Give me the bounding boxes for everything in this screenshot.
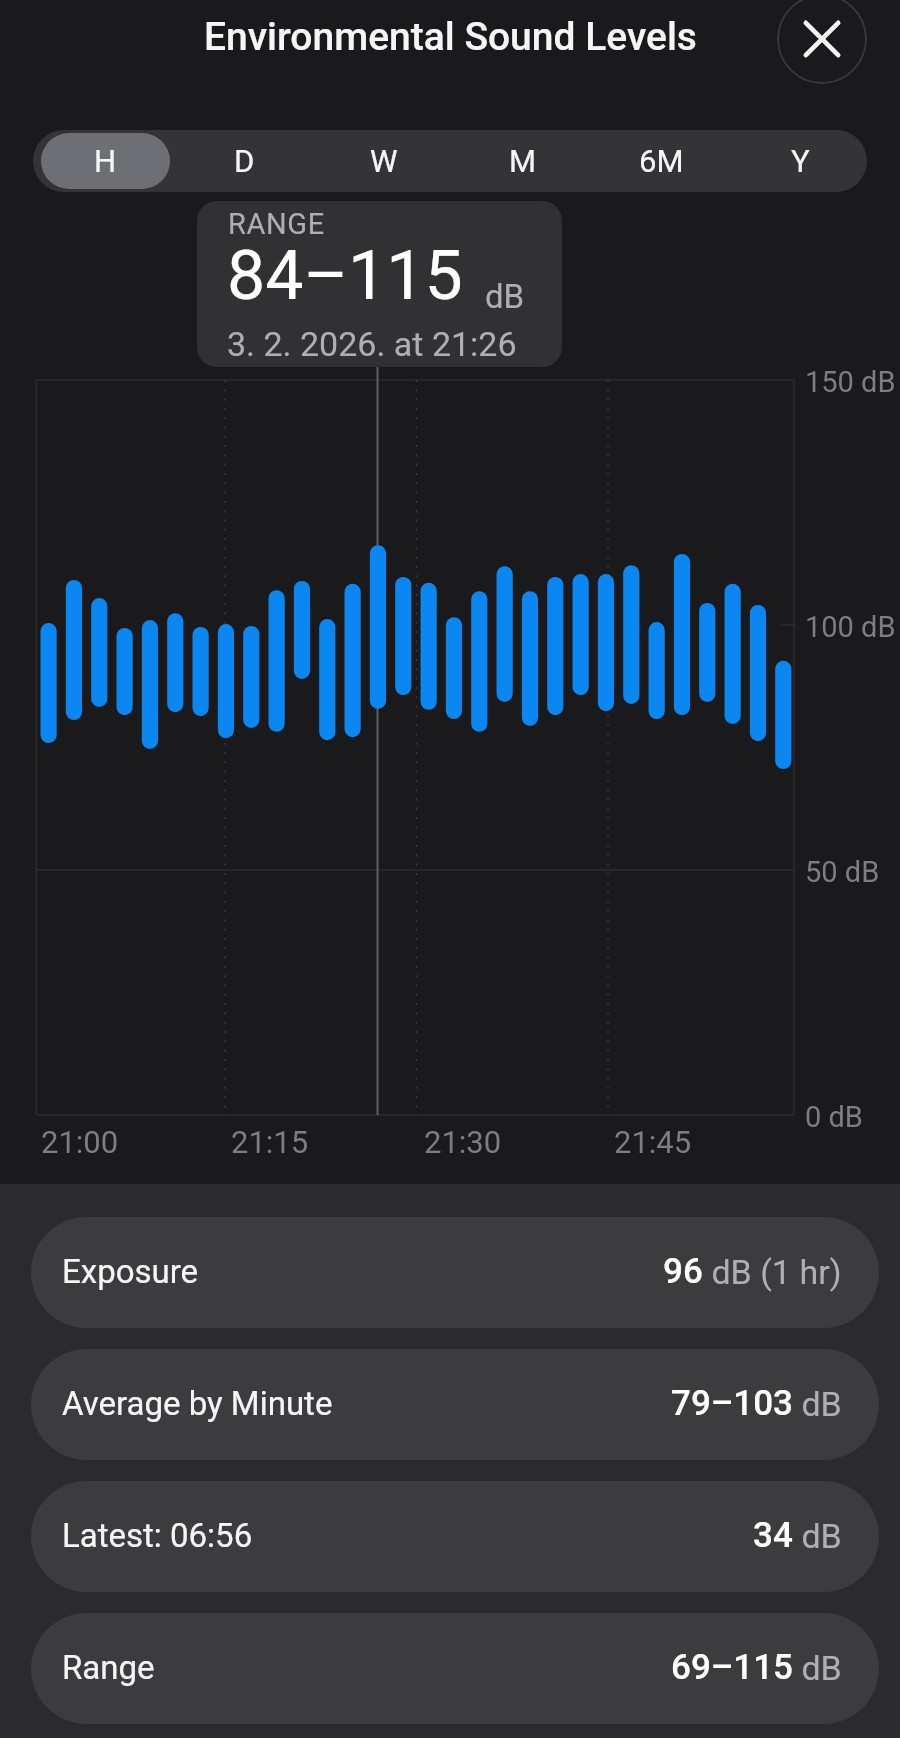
staticText: 150 dB — [805, 365, 896, 399]
button[interactable]: W — [311, 130, 450, 192]
staticText: W — [370, 143, 398, 179]
button[interactable]: D — [172, 130, 311, 192]
staticText: 3. 2. 2026. at 21:26 — [227, 324, 517, 364]
button[interactable]: Range — [31, 1613, 879, 1724]
staticText: RANGE — [228, 207, 325, 241]
staticText: dB — [485, 277, 525, 316]
staticText: Exposure — [62, 1252, 199, 1291]
staticText: 79–103 — [671, 1383, 793, 1424]
staticText: 100 dB — [805, 610, 896, 644]
staticText: D — [234, 143, 255, 179]
staticText: Environmental Sound Levels — [204, 14, 697, 60]
staticText: H — [94, 143, 117, 179]
staticText: 21:45 — [614, 1124, 692, 1160]
button[interactable]: Latest: 06:56 — [31, 1481, 879, 1592]
staticText: 6M — [639, 143, 684, 179]
button[interactable]: 6M — [589, 130, 728, 192]
staticText: M — [509, 143, 537, 179]
staticText: 69–115 — [671, 1647, 793, 1688]
button[interactable]: M — [450, 130, 589, 192]
button[interactable]: Exposure — [31, 1217, 879, 1328]
button[interactable]: Average by Minute — [31, 1349, 879, 1460]
staticText: 21:30 — [424, 1124, 502, 1160]
staticText: dB — [793, 1516, 842, 1556]
staticText: 21:00 — [41, 1124, 119, 1160]
staticText: dB — [793, 1648, 842, 1688]
staticText: Y — [791, 143, 810, 179]
staticText: 50 dB — [805, 855, 880, 889]
staticText: 84–115 — [227, 236, 463, 316]
staticText: Latest: 06:56 — [62, 1516, 253, 1555]
staticText: 34 — [753, 1515, 793, 1556]
button[interactable]: Y — [728, 130, 867, 192]
staticText: Range — [62, 1648, 155, 1687]
staticText: Average by Minute — [62, 1384, 333, 1423]
staticText: 21:15 — [231, 1124, 309, 1160]
staticText: dB (1 hr) — [703, 1252, 842, 1292]
button[interactable]: H — [33, 130, 172, 192]
button[interactable]: Close — [777, 0, 867, 84]
staticText: dB — [793, 1384, 842, 1424]
staticText: 96 — [663, 1251, 703, 1292]
staticText: 0 dB — [805, 1100, 863, 1134]
